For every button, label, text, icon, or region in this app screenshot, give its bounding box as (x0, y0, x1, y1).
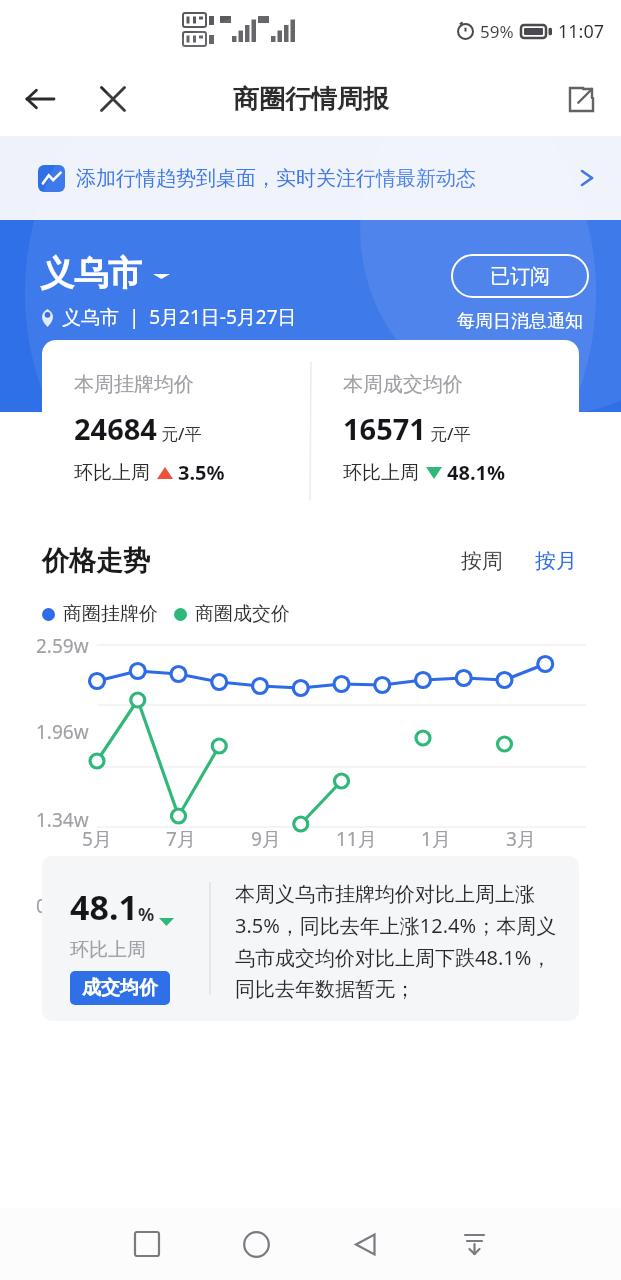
button[interactable]: Close (89, 75, 137, 123)
staticText: 1.34w (36, 807, 89, 833)
staticText: 3月 (506, 826, 536, 852)
staticText: 义乌市 | 5月21日-5月27日 (62, 304, 297, 330)
staticText: 本周义乌市挂牌均价对比上周上涨3.5%，同比去年上涨12.4%；本周义乌市成交均… (235, 882, 563, 1002)
staticText: 环比上周 (70, 938, 146, 962)
button[interactable]: 添加行情趋势到桌面，实时关注行情最新动态 (0, 136, 621, 220)
staticText: 1.96w (36, 719, 89, 745)
staticText: 商圈挂牌价 (63, 602, 158, 626)
button[interactable]: Back (16, 75, 64, 123)
staticText: 5月 (82, 826, 112, 852)
staticText: 义乌市 (40, 252, 142, 295)
button[interactable]: 48.1 (42, 856, 579, 1021)
staticText: 环比上周 (74, 461, 150, 485)
button[interactable]: Home (202, 1208, 311, 1280)
staticText: 成交均价 (82, 976, 158, 1000)
button[interactable]: 成交均价 (70, 971, 170, 1005)
button[interactable]: 义乌市 (40, 252, 170, 295)
staticText: 16571 (343, 409, 426, 448)
staticText: 24684 (74, 409, 157, 448)
staticText: 1月 (421, 826, 451, 852)
staticText: 本周挂牌均价 (74, 372, 194, 397)
staticText: 9月 (251, 826, 281, 852)
staticText: 元/平 (430, 422, 471, 445)
staticText: 价格走势 (42, 544, 150, 578)
button[interactable]: Hide keyboard (420, 1208, 529, 1280)
button[interactable]: Share (557, 75, 605, 123)
staticText: 添加行情趋势到桌面，实时关注行情最新动态 (76, 166, 476, 191)
staticText: 48.1% (447, 459, 505, 486)
staticText: 环比上周 (343, 461, 419, 485)
staticText: 商圈行情周报 (233, 83, 389, 116)
staticText: 已订阅 (490, 264, 550, 289)
staticText: 48.1 (70, 884, 138, 930)
staticText: 本周成交均价 (343, 372, 463, 397)
staticText: % (138, 902, 155, 927)
staticText: 商圈成交价 (195, 602, 290, 626)
staticText: 3.5% (178, 459, 225, 486)
button[interactable]: Recents (92, 1208, 202, 1280)
button[interactable]: Back (311, 1208, 420, 1280)
staticText: 0.71w (36, 893, 89, 919)
button[interactable]: 按周 (453, 542, 511, 580)
staticText: 11:07 (558, 19, 605, 44)
staticText: 59% (480, 20, 514, 43)
button[interactable]: 已订阅 (451, 254, 589, 298)
staticText: 元/平 (161, 422, 202, 445)
staticText: 2.59w (36, 633, 89, 659)
button[interactable]: 按月 (527, 542, 585, 580)
staticText: 11月 (336, 826, 377, 852)
staticText: 7月 (166, 826, 196, 852)
staticText: 按月 (535, 548, 577, 574)
staticText: 每周日消息通知 (457, 310, 583, 333)
other: More (577, 168, 597, 188)
button[interactable]: 本周挂牌均价 (42, 340, 579, 522)
staticText: 按周 (461, 548, 503, 574)
